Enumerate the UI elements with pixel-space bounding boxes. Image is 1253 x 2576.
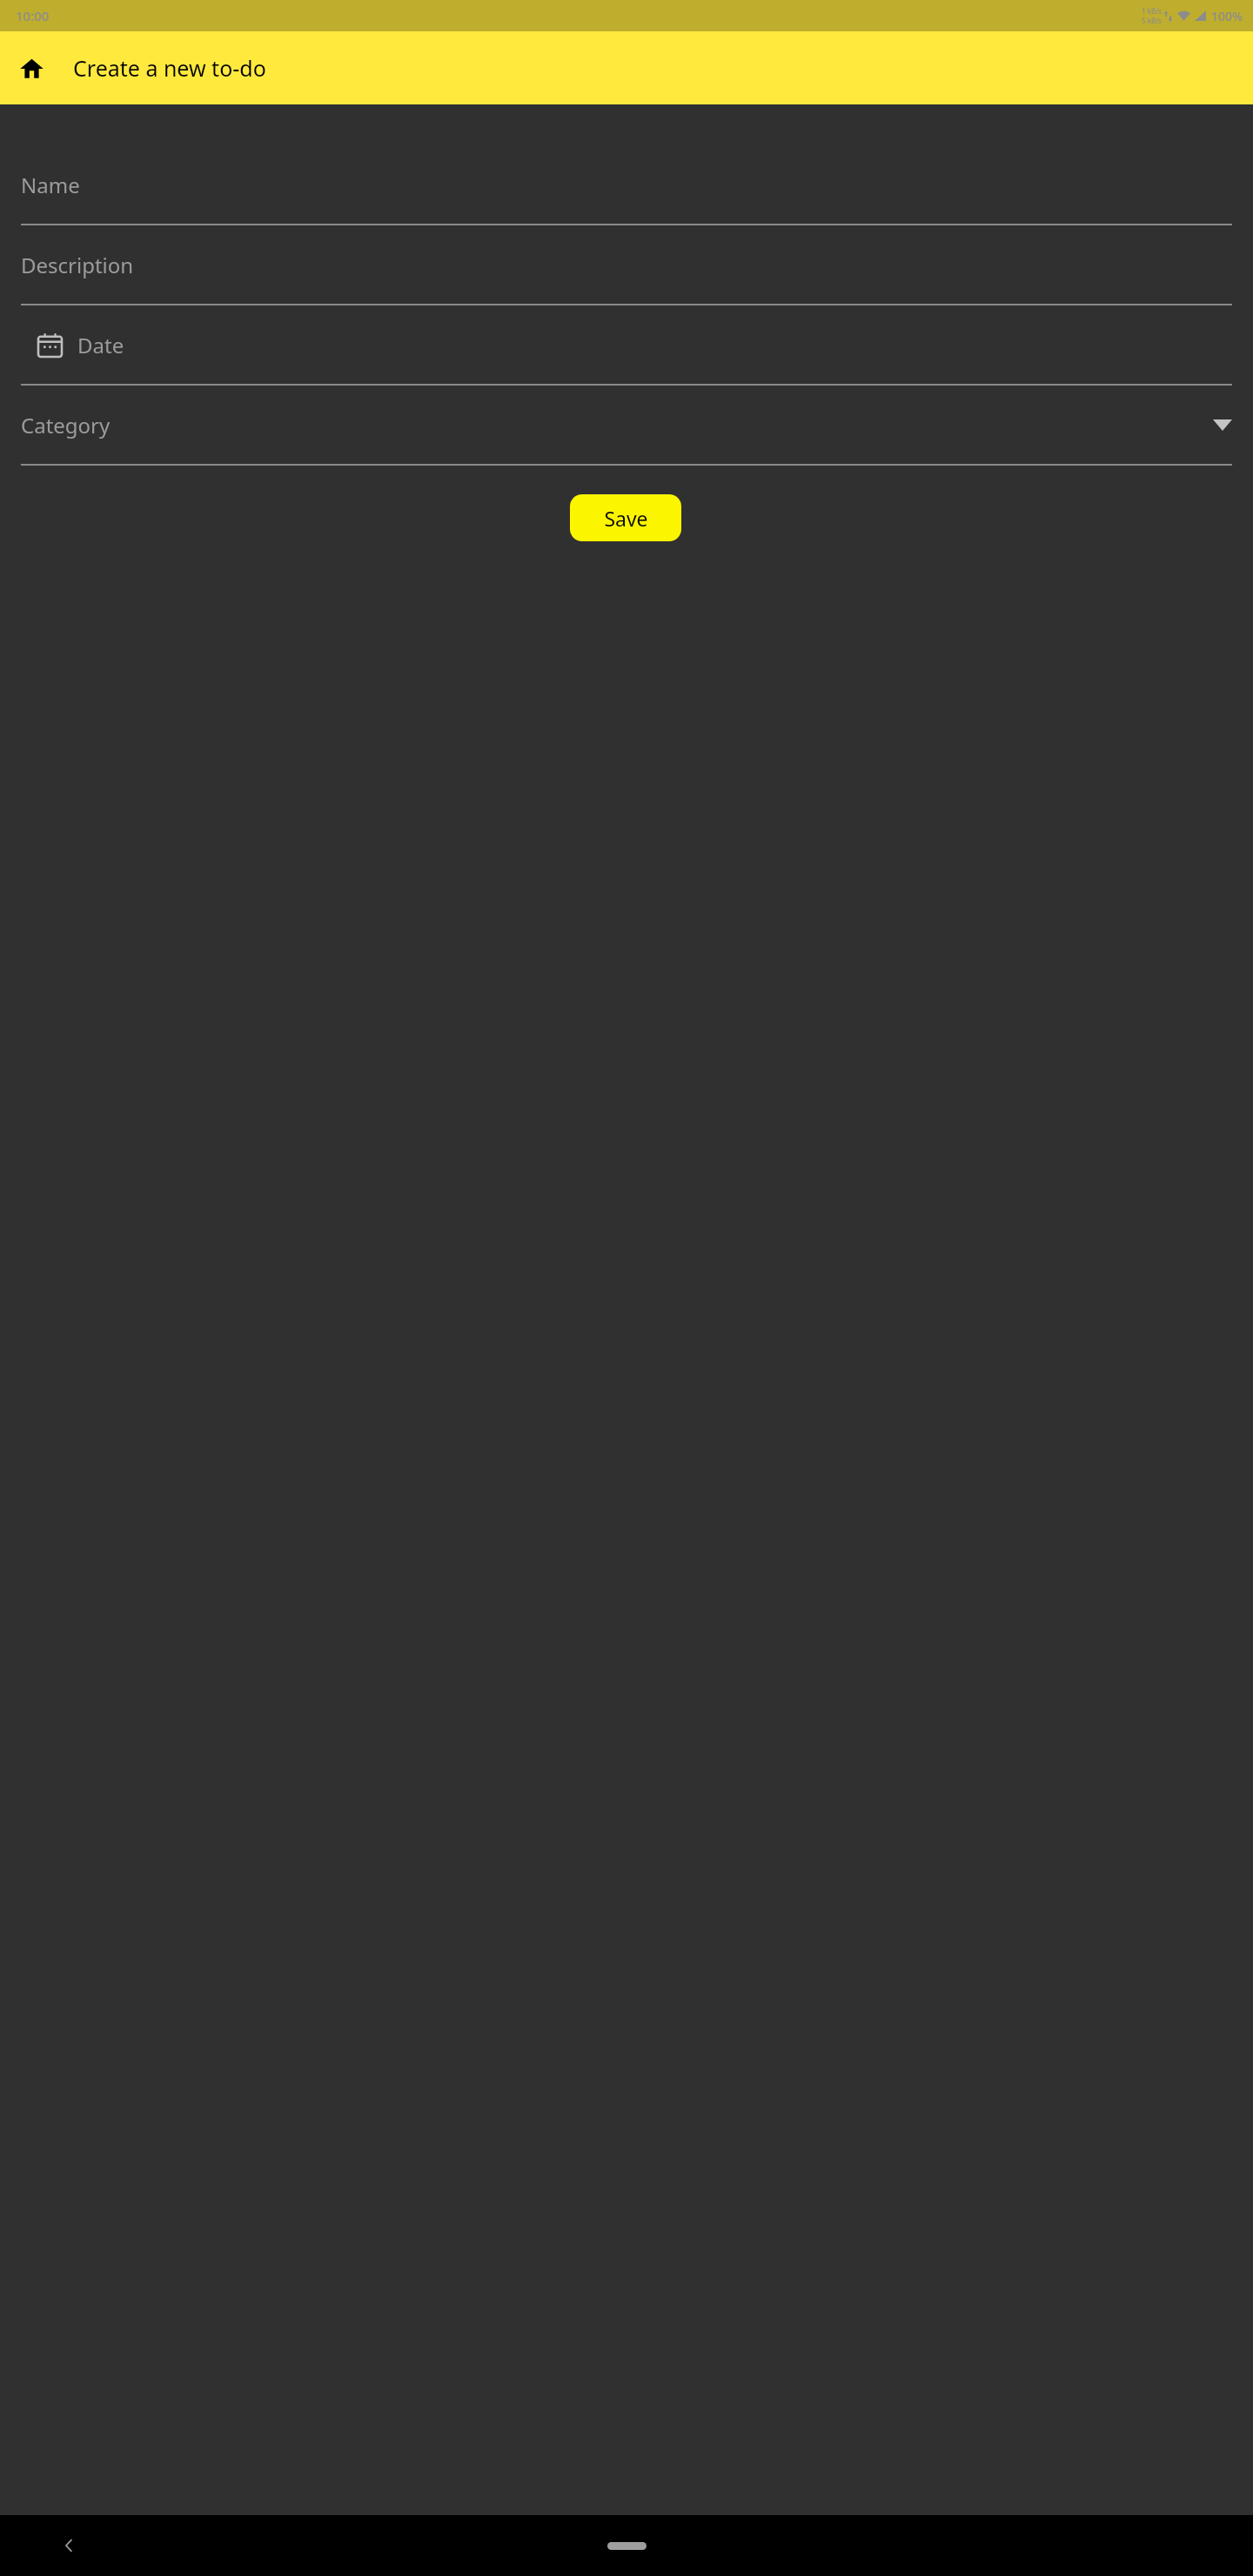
button[interactable]: Home bbox=[10, 47, 52, 89]
button[interactable]: Home bbox=[607, 2542, 647, 2550]
button[interactable]: Category bbox=[21, 386, 1232, 464]
staticText: Category bbox=[21, 411, 111, 439]
staticText: Create a new to-do bbox=[73, 53, 266, 83]
staticText: Name bbox=[21, 171, 80, 199]
button[interactable]: Name bbox=[21, 145, 1232, 224]
staticText: 10:00 bbox=[16, 7, 50, 24]
staticText: 100% bbox=[1211, 8, 1243, 24]
staticText: 1 kB/s bbox=[1142, 6, 1162, 16]
button[interactable]: Save bbox=[570, 494, 681, 541]
staticText: 5 kB/s bbox=[1142, 16, 1162, 25]
staticText: Save bbox=[604, 505, 648, 532]
button[interactable]: Back bbox=[49, 2525, 90, 2566]
staticText: Description bbox=[21, 251, 134, 279]
staticText: Date bbox=[77, 331, 124, 359]
button[interactable]: Description bbox=[21, 225, 1232, 304]
button[interactable]: Date bbox=[21, 305, 1232, 384]
